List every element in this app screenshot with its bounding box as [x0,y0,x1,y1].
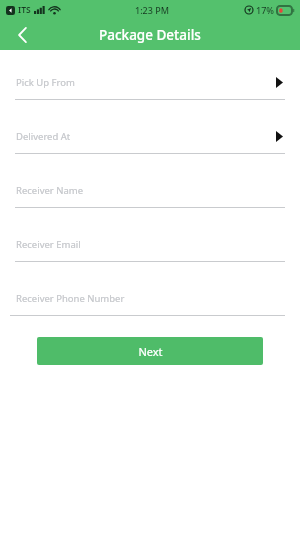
button[interactable]: Receiver Phone Number [0,288,300,316]
button[interactable]: Receiver Email [0,234,300,262]
staticText: Pick Up From [16,76,75,89]
button[interactable]: Delivered At [0,126,300,154]
button[interactable]: Next [37,337,263,365]
staticText: Delivered At [16,130,71,143]
staticText: 1:23 PM [135,4,169,16]
staticText: Receiver Name [16,184,84,197]
staticText: Package Details [99,26,201,44]
staticText: ITS [18,4,31,16]
staticText: Next [138,344,163,359]
staticText: Receiver Email [16,238,81,251]
staticText: 17% [256,4,274,16]
staticText: Receiver Phone Number [16,292,125,305]
button[interactable]: Receiver Name [0,180,300,208]
button[interactable]: Pick Up From [0,72,300,100]
button[interactable]: Back [8,21,36,49]
